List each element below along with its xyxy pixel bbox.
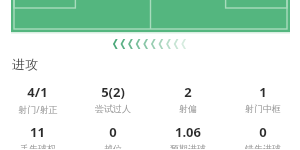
staticText: 射门/射正 <box>18 103 58 115</box>
staticText: 0 <box>109 123 117 141</box>
staticText: 4/1 <box>27 83 48 101</box>
button[interactable]: 11 <box>0 122 75 150</box>
staticText: 射偏 <box>179 103 197 114</box>
staticText: 越位 <box>104 143 122 149</box>
staticText: 1.06 <box>175 123 201 141</box>
button[interactable]: 4/1 <box>0 82 75 116</box>
staticText: 0 <box>259 123 267 141</box>
button[interactable]: 0 <box>75 122 150 150</box>
staticText: 1 <box>259 83 267 101</box>
button[interactable]: 5(2) <box>75 82 150 115</box>
button[interactable]: 2 <box>150 82 225 115</box>
staticText: 射门中框 <box>245 103 281 114</box>
button[interactable]: 1.06 <box>150 122 225 150</box>
staticText: 5(2) <box>101 83 125 101</box>
staticText: 错失进球 <box>245 143 281 149</box>
staticText: 预期进球 <box>170 143 206 149</box>
button[interactable]: 0 <box>225 122 300 150</box>
button[interactable]: 1 <box>225 82 300 115</box>
staticText: 11 <box>30 123 45 141</box>
staticText: 2 <box>184 83 192 101</box>
staticText: 进攻 <box>12 56 38 72</box>
staticText: 尝试过人 <box>95 103 131 114</box>
staticText: 丢失球权 <box>20 143 56 149</box>
